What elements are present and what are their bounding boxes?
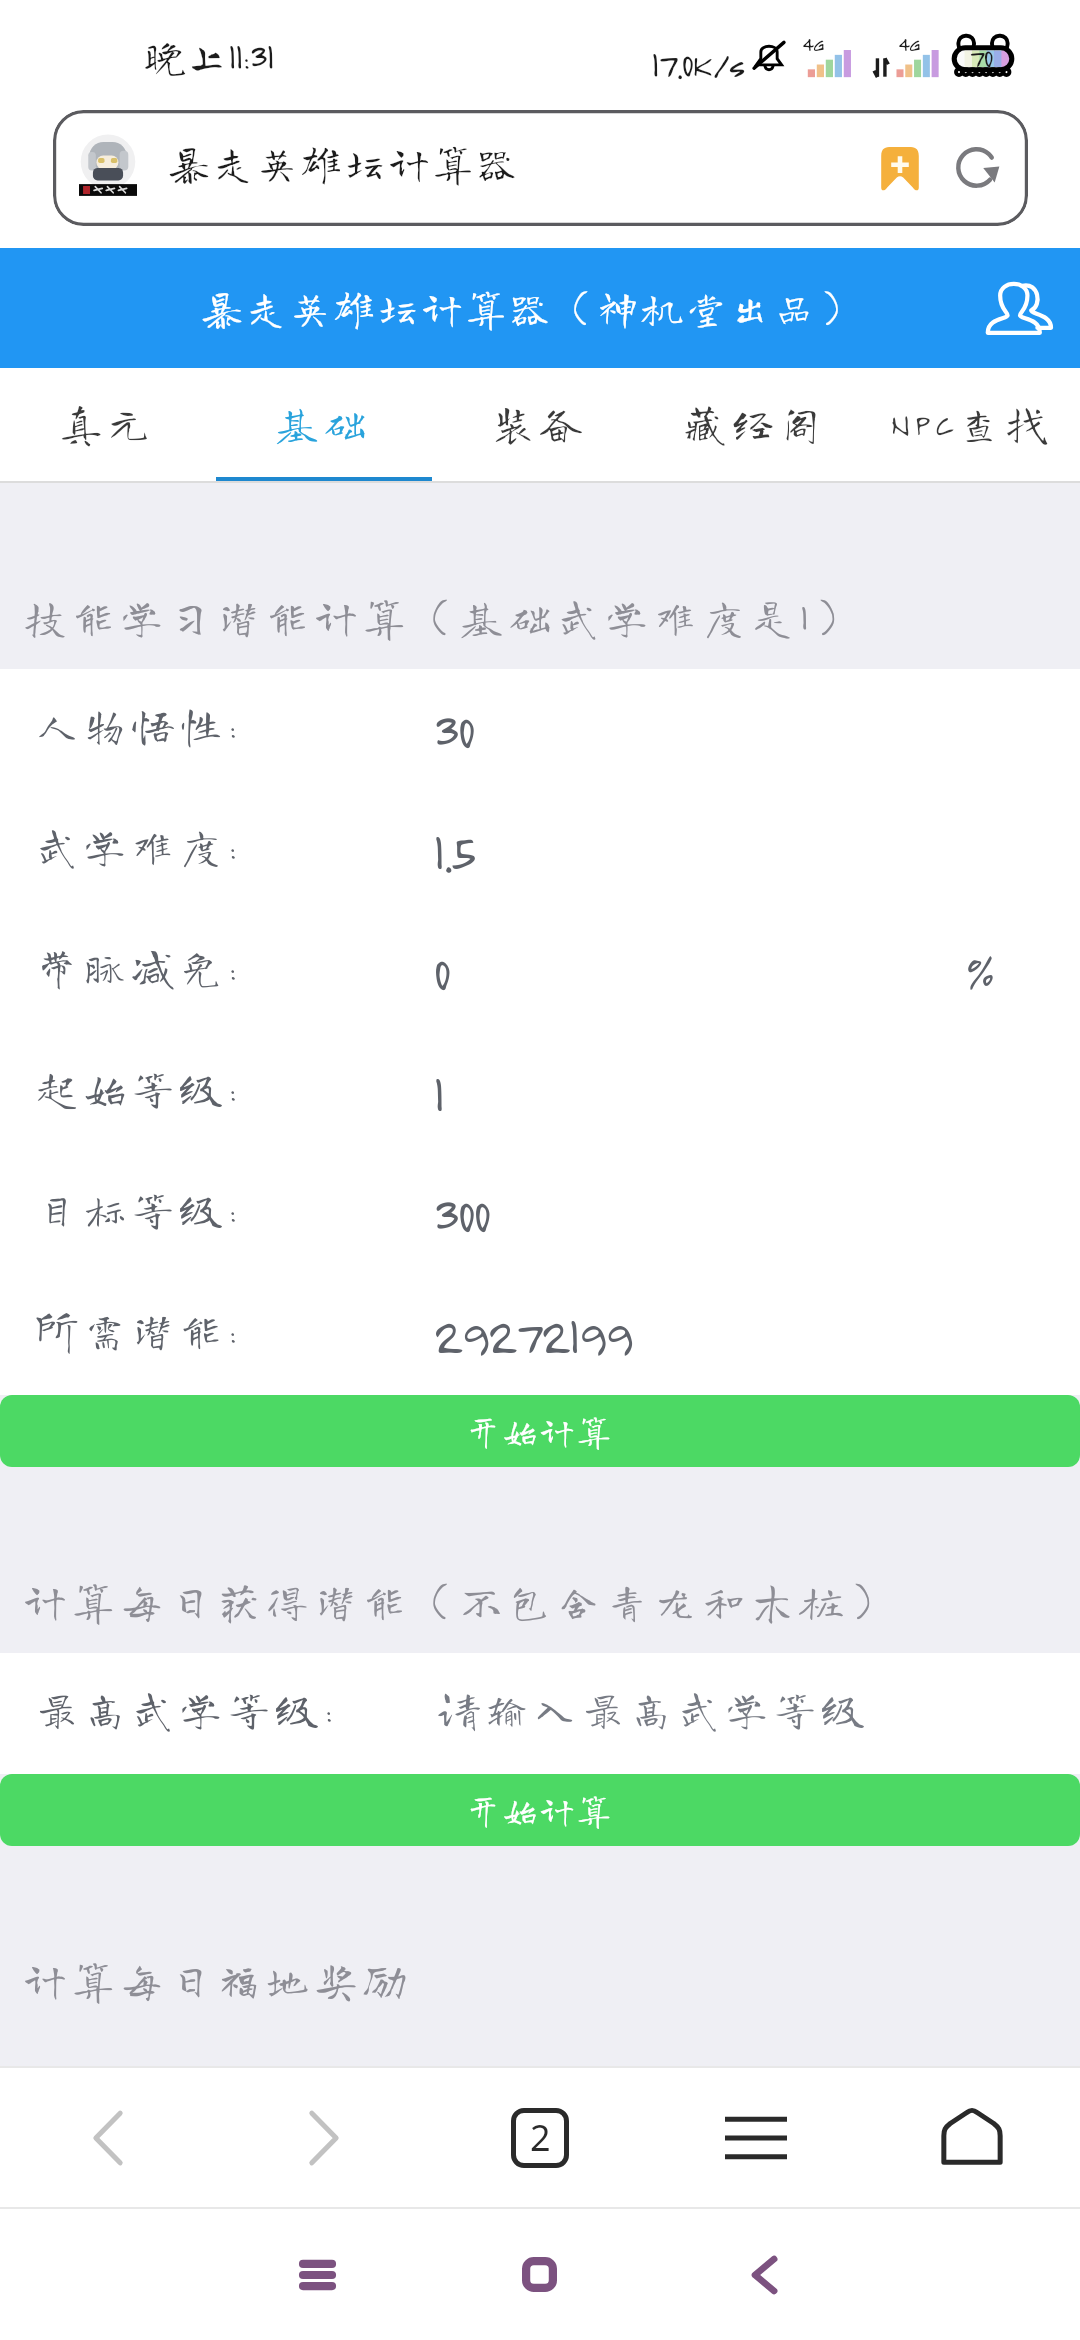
staticText: 300 (433, 1184, 489, 1244)
button[interactable]: Back (650, 2209, 878, 2340)
button[interactable]: Back (0, 2068, 216, 2207)
staticText: 所需潜能: (36, 1309, 242, 1351)
button[interactable]: 开始计算 (0, 1395, 1080, 1467)
button[interactable]: 所需潜能: (0, 1274, 1080, 1395)
staticText: 带脉减免: (36, 946, 242, 988)
staticText: 0 (433, 942, 449, 1002)
button[interactable]: 装备 (432, 368, 648, 483)
button[interactable]: 藏经阁 (648, 368, 864, 483)
staticText: 暴走英雄坛计算器（神机堂出品） (202, 288, 862, 328)
staticText: 人物悟性: (36, 704, 242, 746)
button[interactable]: Refresh (946, 137, 1008, 199)
staticText: 晚上11:31 (144, 35, 274, 77)
button[interactable]: NPC查找 (864, 368, 1080, 483)
staticText: 计算每日福地奖励 (24, 1959, 413, 2001)
staticText: 开始计算 (466, 1414, 614, 1448)
staticText: 2 (530, 2113, 551, 2162)
button[interactable]: Home (428, 2209, 650, 2340)
staticText: 计算每日获得潜能（不包含青龙和木桩） (24, 1580, 898, 1622)
button[interactable]: 真元 (0, 368, 216, 483)
staticText: 技能学习潜能计算（基础武学难度是1） (24, 596, 862, 638)
button[interactable]: 武学难度: (0, 790, 1080, 911)
staticText: 请输入最高武学等级 (438, 1688, 871, 1730)
button[interactable]: Recents (206, 2209, 428, 2340)
staticText: 起始等级: (36, 1067, 242, 1109)
button[interactable]: Forward (216, 2068, 432, 2207)
staticText: 开始计算 (466, 1793, 614, 1827)
staticText: 基础 (276, 402, 373, 444)
button[interactable]: Add bookmark (872, 138, 928, 198)
staticText: 4G (898, 31, 920, 56)
staticText: 藏经阁 (684, 402, 829, 444)
staticText: % (965, 943, 993, 1001)
staticText: 真元 (60, 402, 157, 444)
button[interactable]: 最高武学等级: (0, 1653, 1080, 1774)
button[interactable]: Account (978, 266, 1062, 350)
staticText: 17.0K/s (651, 42, 744, 85)
button[interactable]: 带脉减免: (0, 911, 1080, 1032)
staticText: NPC查找 (890, 402, 1055, 444)
button[interactable]: 基础 (216, 368, 432, 483)
button[interactable]: Home (864, 2068, 1080, 2207)
staticText: 目标等级: (36, 1188, 242, 1230)
button[interactable]: 暴走英雄坛计算器 (53, 110, 1028, 226)
staticText: 4G (802, 31, 824, 56)
staticText: 武学难度: (36, 825, 242, 867)
staticText: 29272199 (433, 1305, 632, 1365)
staticText: 30 (433, 700, 474, 760)
button[interactable]: 起始等级: (0, 1032, 1080, 1153)
button[interactable]: 人物悟性: (0, 669, 1080, 790)
staticText: 1 (433, 1063, 443, 1123)
staticText: 暴走英雄坛计算器 (169, 143, 521, 183)
staticText: 70 (969, 40, 993, 74)
staticText: 1.5 (433, 821, 474, 881)
button[interactable]: 目标等级: (0, 1153, 1080, 1274)
button[interactable]: 开始计算 (0, 1774, 1080, 1846)
staticText: 装备 (492, 402, 589, 444)
button[interactable]: Menu (648, 2068, 864, 2207)
button[interactable]: Tabs (432, 2068, 648, 2207)
staticText: 最高武学等级: (36, 1688, 338, 1730)
